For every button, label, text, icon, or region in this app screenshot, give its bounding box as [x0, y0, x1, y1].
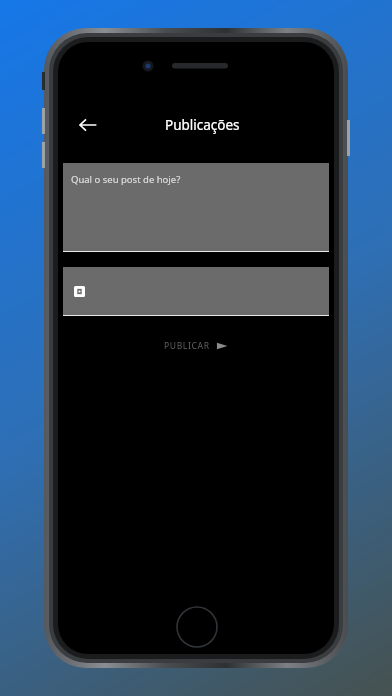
button[interactable]: Qual o seu post de hoje? — [63, 163, 329, 252]
staticText: Qual o seu post de hoje? — [71, 173, 181, 186]
button[interactable]: Add photo — [63, 267, 329, 316]
button[interactable]: Back — [68, 105, 108, 145]
button[interactable]: PUBLICAR — [150, 334, 242, 358]
staticText: PUBLICAR — [164, 340, 210, 352]
staticText: Publicações — [165, 116, 240, 134]
